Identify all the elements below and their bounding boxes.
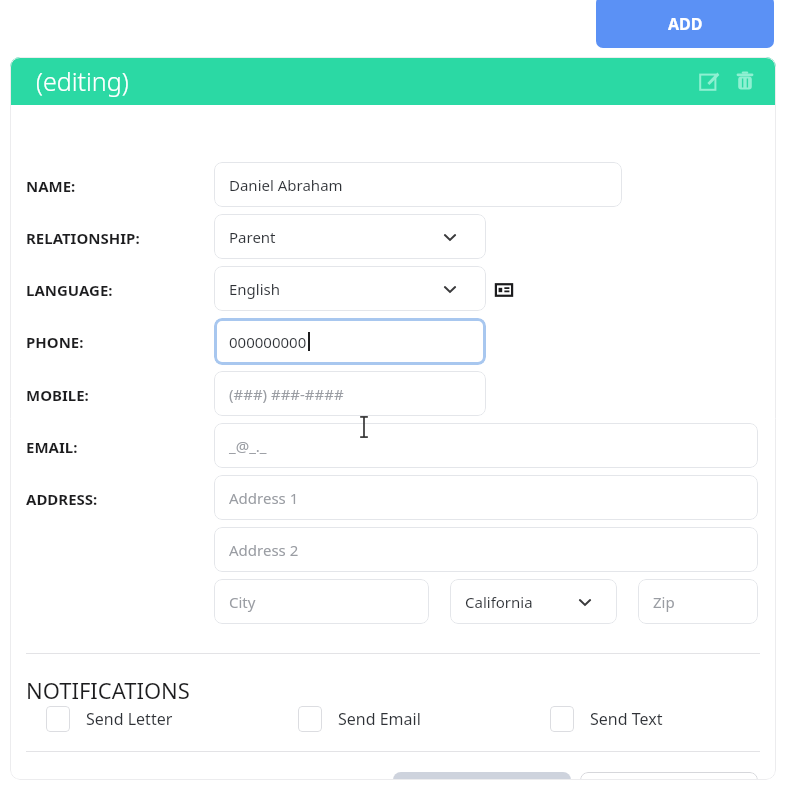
staticText: Zip: [653, 592, 675, 612]
button[interactable]: Address 2: [214, 527, 758, 572]
button[interactable]: SAVE: [580, 772, 758, 780]
button[interactable]: 000000000: [214, 318, 486, 365]
button[interactable]: _@_._: [214, 423, 758, 468]
staticText: (###) ###-####: [229, 384, 344, 404]
button[interactable]: Daniel Abraham: [214, 162, 622, 207]
staticText: NOTIFICATIONS: [26, 675, 190, 705]
button[interactable]: California: [450, 579, 617, 624]
staticText: City: [229, 592, 256, 612]
staticText: PHONE:: [26, 332, 84, 352]
staticText: Parent: [229, 227, 276, 247]
staticText: Send Text: [590, 708, 663, 730]
button[interactable]: English: [214, 266, 486, 311]
button[interactable]: City: [214, 579, 429, 624]
button[interactable]: Delete: [730, 66, 760, 96]
staticText: Address 2: [229, 540, 299, 560]
staticText: RELATIONSHIP:: [26, 228, 140, 248]
staticText: _@_._: [229, 436, 267, 456]
button[interactable]: (###) ###-####: [214, 371, 486, 416]
staticText: LANGUAGE:: [26, 280, 113, 300]
staticText: EMAIL:: [26, 437, 78, 457]
staticText: (editing): [36, 64, 129, 98]
button[interactable]: Send Text: [550, 706, 663, 732]
staticText: ADD: [668, 13, 703, 35]
staticText: NAME:: [26, 176, 76, 196]
staticText: English: [229, 279, 281, 299]
button[interactable]: CANCEL: [393, 772, 571, 780]
staticText: Send Email: [338, 708, 421, 730]
button[interactable]: Edit: [694, 66, 724, 96]
button[interactable]: Contact card: [495, 281, 513, 299]
button[interactable]: Address 1: [214, 475, 758, 520]
staticText: 000000000: [229, 332, 307, 352]
staticText: Address 1: [229, 488, 299, 508]
staticText: Daniel Abraham: [229, 175, 343, 195]
staticText: MOBILE:: [26, 385, 89, 405]
button[interactable]: Send Email: [298, 706, 421, 732]
staticText: Send Letter: [86, 708, 173, 730]
button[interactable]: Parent: [214, 214, 486, 259]
staticText: California: [465, 592, 533, 612]
button[interactable]: ADD: [596, 0, 774, 48]
button[interactable]: Zip: [638, 579, 758, 624]
staticText: ADDRESS:: [26, 489, 98, 509]
button[interactable]: Send Letter: [46, 706, 173, 732]
